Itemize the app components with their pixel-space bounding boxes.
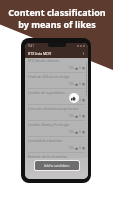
button[interactable]: Financiar 200 euros vintage [25,73,88,89]
staticText: Camillas de ingredientes [28,91,65,95]
staticText: Cantidad de elementos [28,139,63,143]
staticText: 4 [79,82,81,86]
staticText: 120 [69,98,74,102]
staticText: RTX Caruelo valencia [28,59,60,63]
staticText: by means of likes [18,18,96,30]
staticText: 4 [79,98,81,102]
staticText: Camillas filtrata y Prolongar [28,123,70,127]
staticText: 120 [69,162,74,166]
staticText: 120 [69,146,74,150]
staticText: 4 [79,114,81,118]
staticText: Reciente de los elementos [28,155,68,159]
staticText: Content classification [8,6,106,18]
staticText: Add to candidates [44,164,70,168]
staticText: 4 [79,130,81,134]
staticText: 4 [79,66,81,70]
staticText: 9:41 [28,44,34,48]
staticText: 120 [69,66,74,70]
button[interactable]: Reciente de los elementos [25,153,88,169]
staticText: 4 [79,146,81,150]
staticText: 120 [69,114,74,118]
staticText: 4 [79,162,81,166]
staticText: 120 [69,82,74,86]
button[interactable]: Com esto elemento progesterona [25,105,88,121]
button[interactable]: Camillas de ingredientes [25,89,88,105]
button[interactable]: RTX Caruelo valencia [25,169,88,178]
staticText: 120 [69,130,74,134]
staticText: RTX lista MDV [28,51,52,56]
button[interactable]: Camillas filtrata y Prolongar [25,121,88,137]
staticText: Financiar 200 euros vintage [28,75,70,79]
button[interactable]: Like [69,93,79,103]
button[interactable]: Cantidad de elementos [25,137,88,153]
staticText: Com esto elemento progesterona [28,107,79,111]
button[interactable]: RTX Caruelo valencia [25,58,88,73]
button[interactable]: More options [82,52,85,55]
button[interactable]: Add to candidates [35,161,79,170]
